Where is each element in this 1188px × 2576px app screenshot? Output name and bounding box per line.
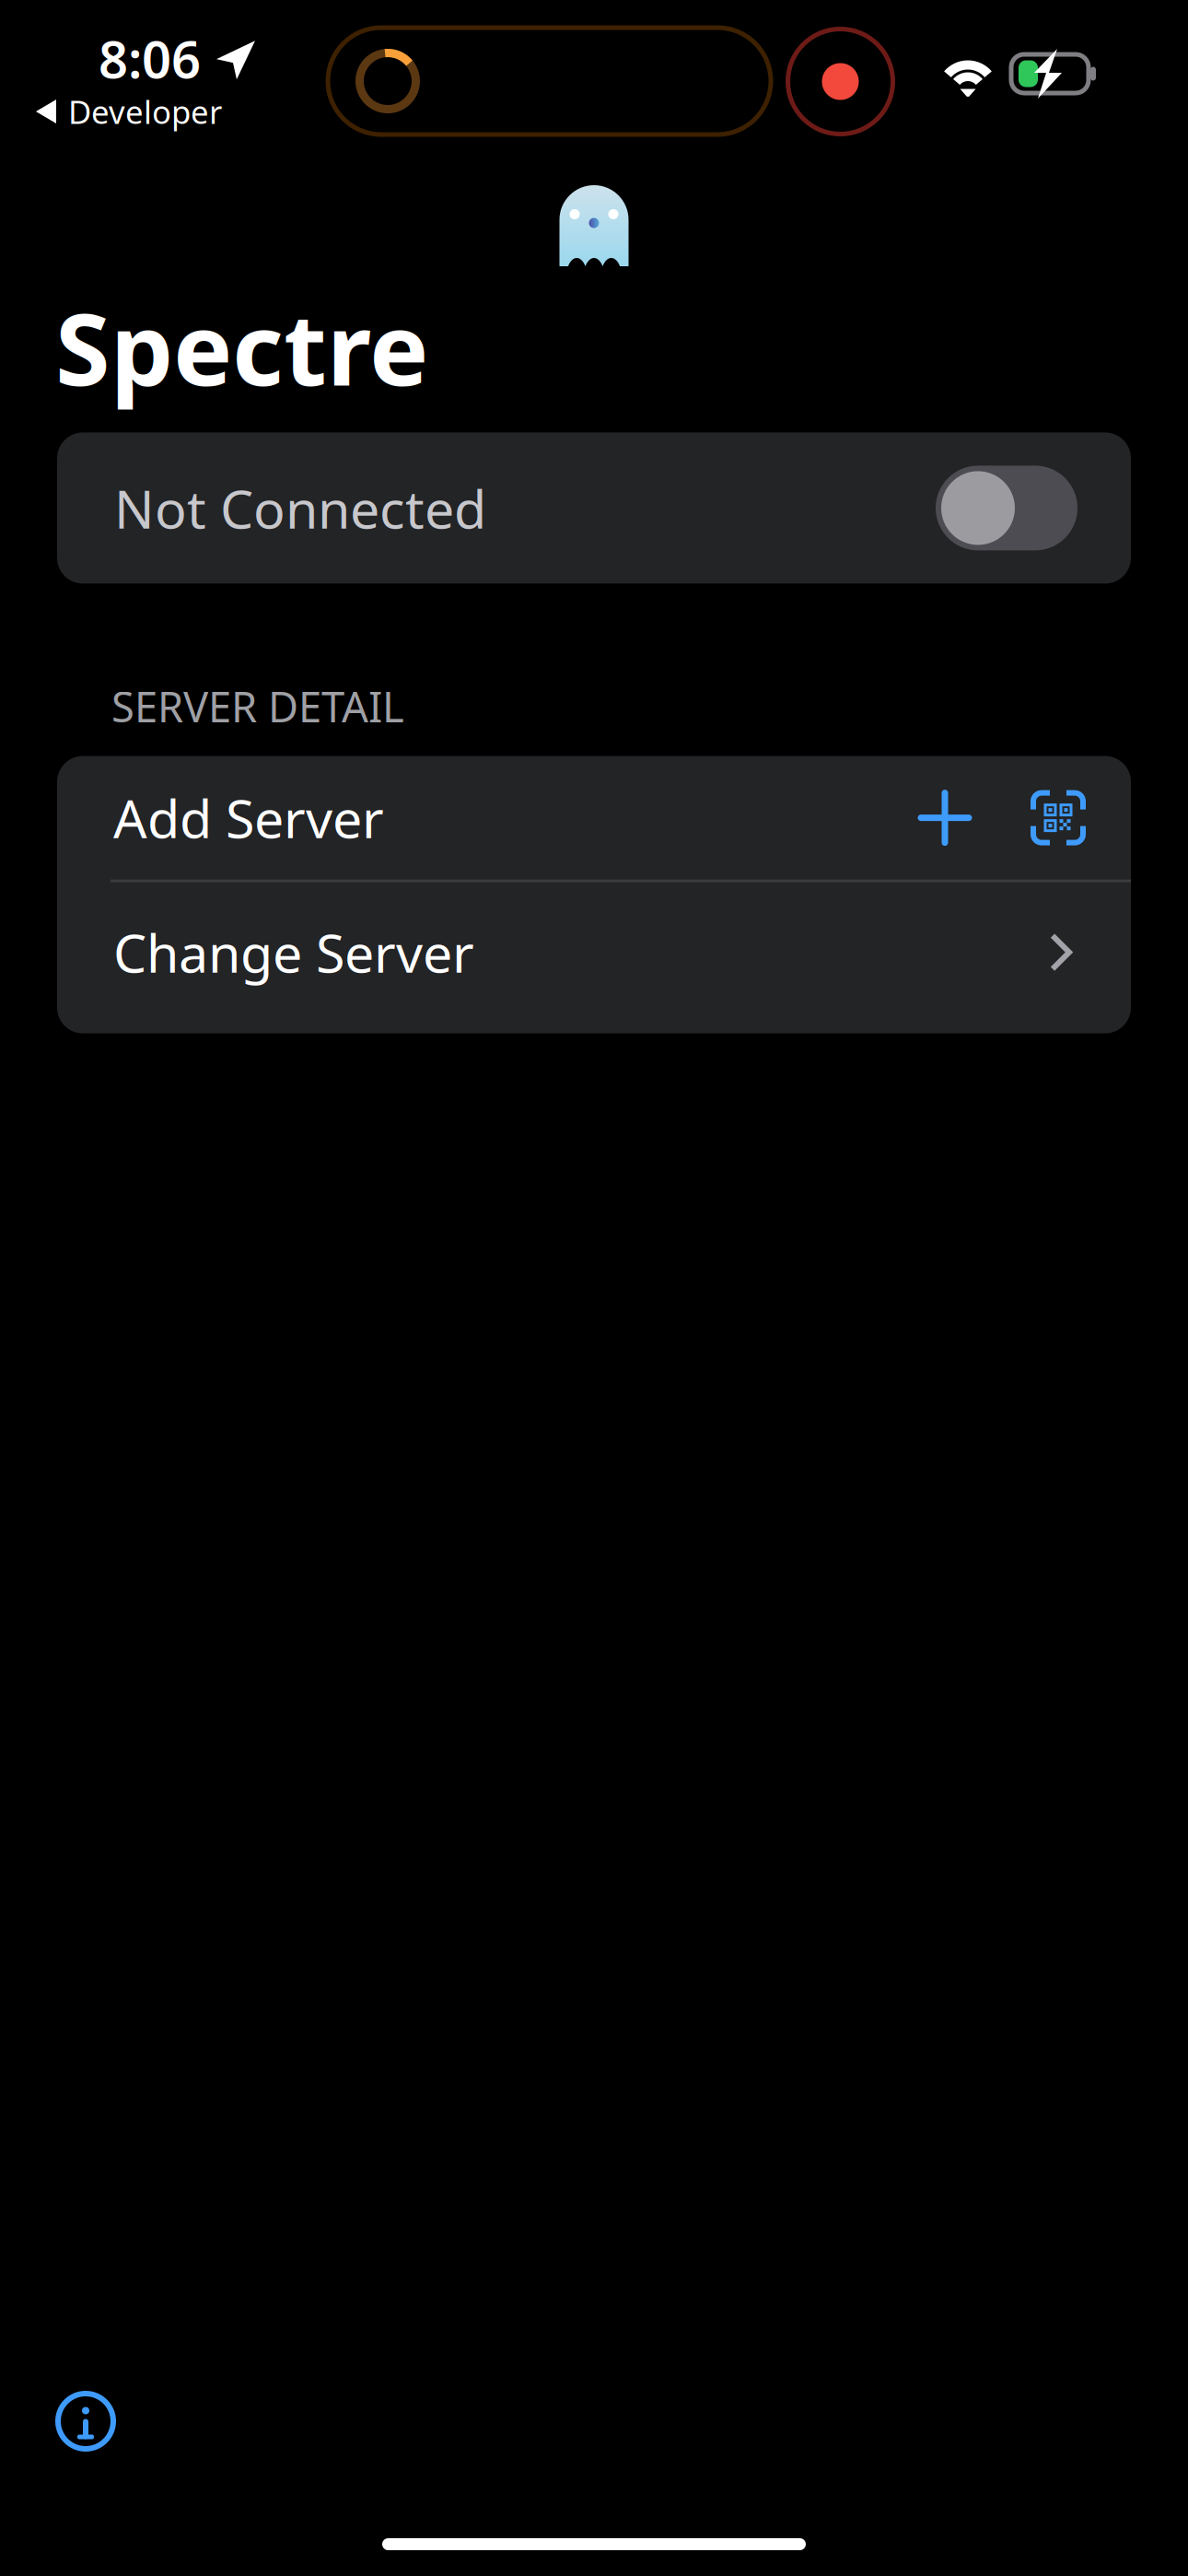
button[interactable]: Add Server: [57, 756, 1131, 879]
staticText: Not Connected: [114, 473, 486, 543]
button[interactable]: Info: [35, 2371, 136, 2472]
button[interactable]: Developer: [36, 90, 222, 133]
staticText: Change Server: [113, 917, 474, 987]
staticText: Developer: [68, 90, 222, 133]
staticText: 8:06: [99, 24, 201, 93]
staticText: SERVER DETAIL: [111, 678, 404, 734]
staticText: Add Server: [113, 783, 384, 853]
staticText: Spectre: [55, 281, 428, 413]
button[interactable]: Change Server: [57, 882, 1131, 1033]
button[interactable]: Not Connected: [57, 432, 1131, 584]
